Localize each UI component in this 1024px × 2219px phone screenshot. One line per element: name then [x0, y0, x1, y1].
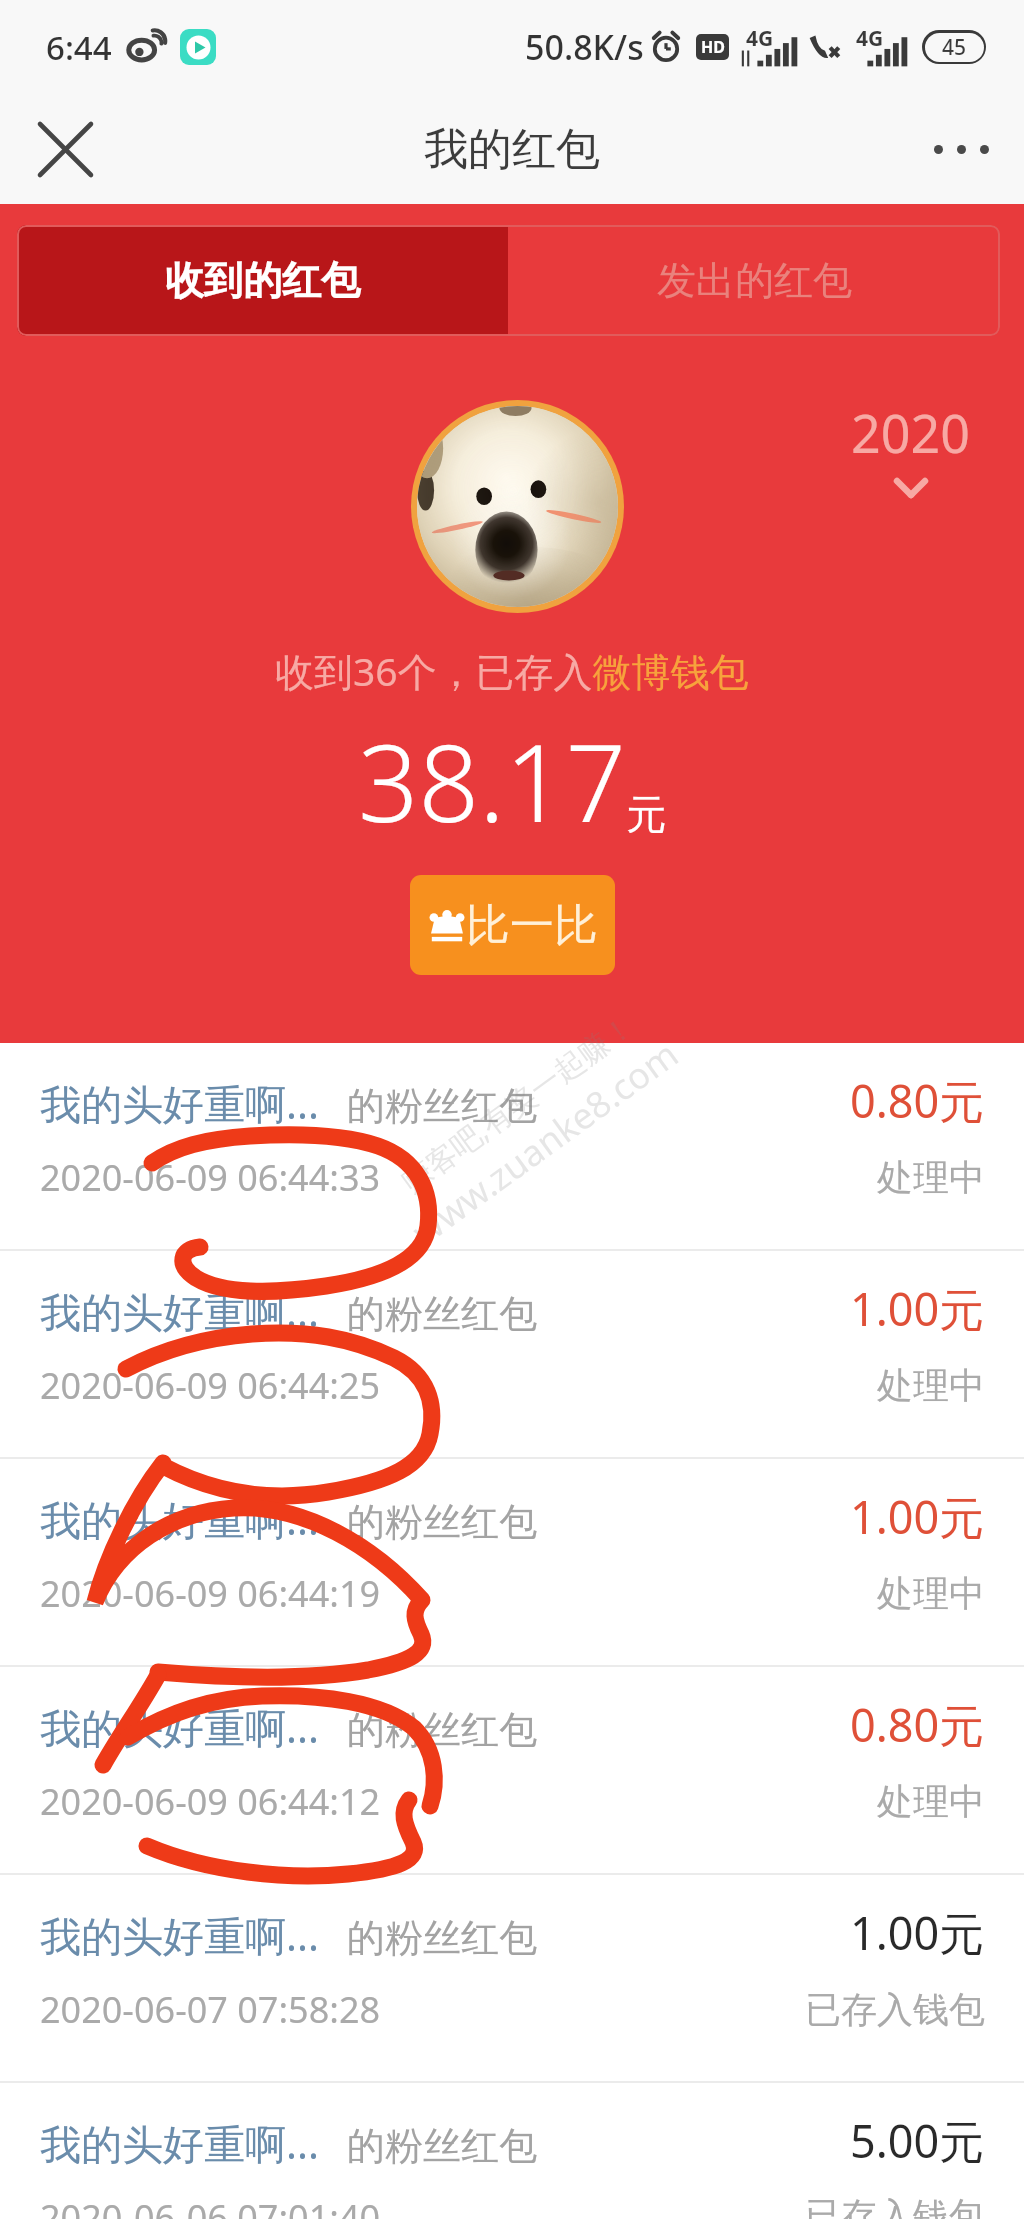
staticText: 的粉丝红包 [347, 2122, 537, 2170]
button[interactable]: 收到的红包 [17, 225, 508, 336]
staticText: 处理中 [877, 1363, 985, 1408]
staticText: 5.00元 [850, 2110, 985, 2171]
staticText: 0.80元 [850, 1070, 985, 1131]
button[interactable]: 比一比 [410, 875, 615, 975]
button[interactable]: 2020 [851, 397, 970, 498]
staticText: 的粉丝红包 [347, 1914, 537, 1962]
staticText: 已存入钱包 [805, 1987, 985, 2032]
staticText: 4G [856, 24, 884, 53]
staticText: 发出的红包 [657, 256, 852, 305]
staticText: 1.00元 [850, 1902, 985, 1963]
staticText: 处理中 [877, 1571, 985, 1616]
staticText: 元 [626, 789, 666, 839]
staticText: 我的头好重啊... [40, 1075, 319, 1131]
button[interactable]: More options [916, 104, 1006, 194]
staticText: 1.00元 [850, 1278, 985, 1339]
staticText: 6:44 [46, 25, 112, 70]
staticText: 我的头好重啊... [40, 1283, 319, 1339]
staticText: 比一比 [466, 898, 598, 953]
staticText: 收到的红包 [165, 256, 360, 305]
staticText: HD [701, 36, 725, 58]
button[interactable]: Close [20, 104, 110, 194]
button[interactable]: 我的头好重啊... [0, 1043, 1024, 1249]
staticText: 2020-06-09 06:44:12 [40, 1777, 381, 1826]
staticText: 50.8K/s [525, 24, 644, 70]
staticText: 我的头好重啊... [40, 1699, 319, 1755]
button[interactable]: 我的头好重啊... [0, 1875, 1024, 2081]
staticText: 2020-06-07 07:58:28 [40, 1985, 381, 2034]
staticText: 我的头好重啊... [40, 1907, 319, 1963]
staticText: 2020-06-09 06:44:33 [40, 1153, 381, 1202]
staticText: 收到36个，已存入微博钱包 [275, 644, 749, 697]
staticText: 38.17 [358, 709, 626, 853]
staticText: 我的头好重啊... [40, 2115, 319, 2171]
button[interactable]: 我的头好重啊... [0, 1667, 1024, 1873]
button[interactable]: 发出的红包 [508, 225, 1000, 336]
staticText: 1.00元 [850, 1486, 985, 1547]
button[interactable]: 我的头好重啊... [0, 1459, 1024, 1665]
staticText: 处理中 [877, 1155, 985, 1200]
staticText: 的粉丝红包 [347, 1706, 537, 1754]
staticText: 0.80元 [850, 1694, 985, 1755]
staticText: 2020 [851, 397, 970, 468]
staticText: 处理中 [877, 1779, 985, 1824]
staticText: www.zuanke8.com [402, 1029, 688, 1256]
staticText: 我的头好重啊... [40, 1491, 319, 1547]
staticText: 2020-06-06 07:01:40 [40, 2193, 381, 2219]
staticText: 的粉丝红包 [347, 1082, 537, 1130]
staticText: 的粉丝红包 [347, 1498, 537, 1546]
staticText: 2020-06-09 06:44:19 [40, 1569, 381, 1618]
staticText: 已存入钱包 [805, 2193, 985, 2219]
staticText: 2020-06-09 06:44:25 [40, 1361, 381, 1410]
staticText: 45 [942, 33, 967, 62]
staticText: 的粉丝红包 [347, 1290, 537, 1338]
staticText: 赚客吧,有奖一起赚！ [393, 1004, 642, 1201]
staticText: 我的红包 [424, 122, 600, 177]
staticText: 4G [746, 24, 774, 53]
button[interactable]: 我的头好重啊... [0, 2083, 1024, 2219]
button[interactable]: 我的头好重啊... [0, 1251, 1024, 1457]
